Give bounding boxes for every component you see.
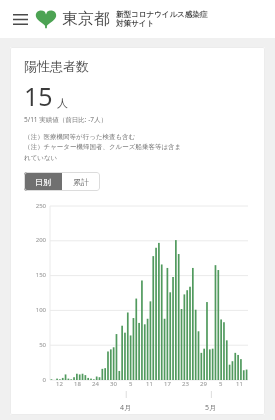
staticText: 11	[236, 380, 243, 388]
staticText: 4月	[120, 403, 132, 413]
staticText: 18	[74, 380, 81, 388]
staticText: 東京都	[62, 9, 110, 29]
staticText: 陽性患者数	[24, 58, 89, 74]
staticText: 5月	[205, 403, 217, 413]
staticText: 新型コロナウイルス感染症	[116, 10, 208, 19]
staticText: 150	[35, 271, 46, 279]
staticText: 5	[219, 380, 223, 388]
staticText: 24	[92, 380, 99, 388]
staticText: 17	[164, 380, 171, 388]
button[interactable]: Menu	[9, 8, 31, 30]
button[interactable]: 日別	[24, 172, 62, 191]
staticText: 250	[35, 202, 46, 210]
staticText: 15	[24, 79, 53, 113]
staticText: 0	[42, 376, 46, 384]
staticText: 50	[39, 341, 46, 349]
staticText: 12	[56, 380, 63, 388]
staticText: 人	[57, 96, 68, 110]
staticText: 11	[146, 380, 153, 388]
staticText: 対策サイト	[116, 19, 155, 28]
staticText: 5/11 実績値（前日比: -7人）	[24, 115, 108, 124]
staticText: （注）医療機関等が行った検査も含む	[24, 133, 136, 141]
staticText: 累計	[73, 177, 89, 187]
staticText: 23	[182, 380, 189, 388]
staticText: 5	[129, 380, 133, 388]
staticText: 30	[110, 380, 117, 388]
button[interactable]: 累計	[62, 172, 100, 191]
staticText: （注）チャーター機帰国者、クルーズ船乗客等は含ま れていない	[24, 143, 182, 162]
staticText: 100	[35, 306, 46, 314]
staticText: 200	[35, 236, 46, 244]
staticText: 29	[200, 380, 207, 388]
staticText: 日別	[35, 177, 51, 187]
